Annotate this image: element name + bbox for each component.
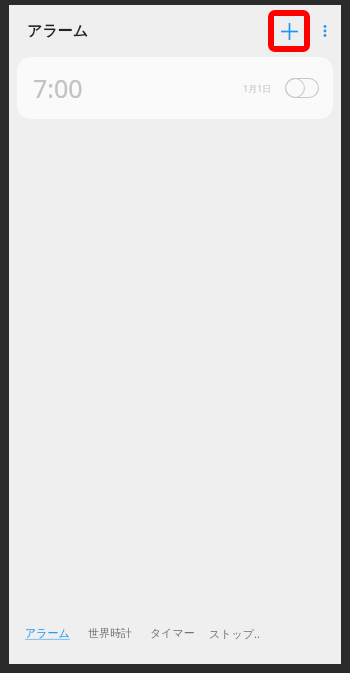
staticText: ストップ.. — [209, 626, 260, 641]
staticText: アラーム — [27, 22, 89, 41]
button[interactable]: 世界時計 — [88, 616, 132, 650]
staticText: 世界時計 — [88, 626, 132, 640]
button[interactable]: アラーム — [25, 616, 70, 650]
staticText: タイマー — [150, 626, 195, 640]
staticText: アラーム — [25, 626, 70, 640]
button[interactable]: ストップ.. — [209, 616, 260, 650]
button[interactable]: 7:00 — [17, 57, 333, 119]
button[interactable]: タイマー — [150, 616, 195, 650]
staticText: 1月1日 — [243, 82, 272, 94]
button[interactable]: Alarm toggle, off — [285, 78, 319, 98]
button[interactable]: More options — [313, 19, 337, 43]
staticText: 7:00 — [33, 71, 83, 105]
button[interactable]: Add alarm — [274, 16, 304, 46]
